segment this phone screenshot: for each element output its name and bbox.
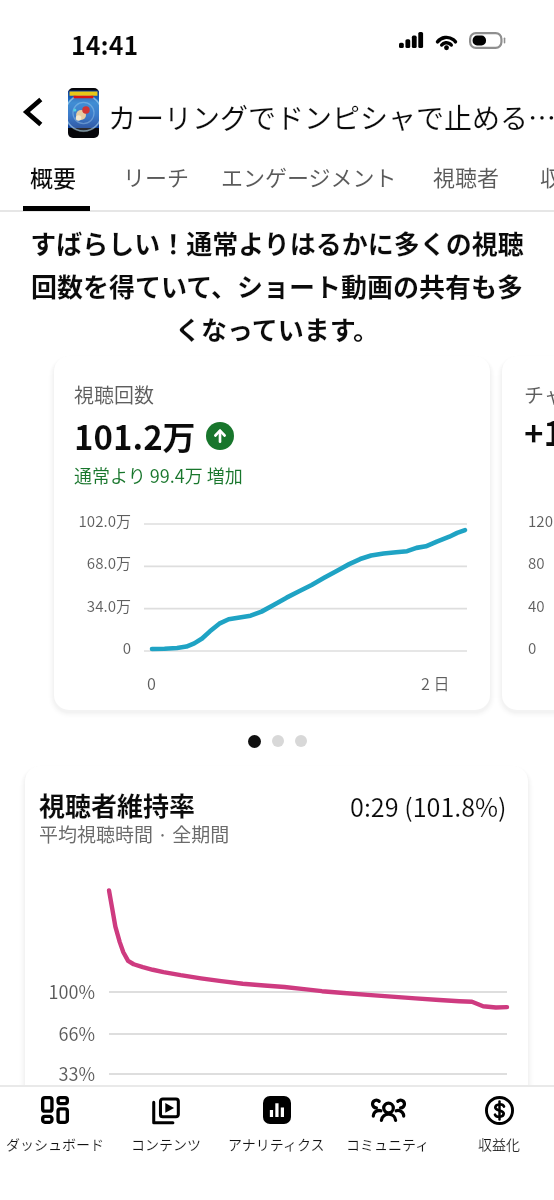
staticText: 0 (147, 671, 156, 694)
staticText: 視聴者 (433, 160, 500, 192)
button[interactable]: 概要 (0, 148, 98, 212)
staticText: コンテンツ (131, 1134, 201, 1154)
staticText: ダッシュボード (6, 1134, 104, 1154)
button[interactable]: アナリティクス (221, 1094, 332, 1200)
staticText: アナリティクス (228, 1134, 325, 1154)
staticText: エンゲージメント (221, 160, 397, 192)
button[interactable]: エンゲージメント (190, 148, 397, 212)
button[interactable]: コンテンツ (110, 1094, 221, 1200)
staticText: 14:41 (71, 26, 139, 62)
button[interactable]: 視聴回数 (54, 356, 490, 710)
staticText: 0 (54, 637, 131, 659)
staticText: すばらしい！通常よりはるかに多くの視聴回数を得ていて、ショート動画の共有も多くな… (26, 224, 528, 348)
staticText: コミュニティ (346, 1134, 430, 1154)
staticText: +1 (524, 408, 554, 456)
button[interactable]: 収益化 (500, 148, 554, 212)
staticText: 34.0万 (54, 595, 131, 617)
staticText: 102.0万 (54, 510, 131, 532)
button[interactable]: 視聴者維持率 (25, 766, 528, 1106)
button[interactable]: 視聴者 (397, 148, 500, 212)
staticText: 0 (528, 637, 537, 659)
staticText: 収益化 (478, 1134, 520, 1154)
staticText: 120 (528, 510, 553, 532)
staticText: チャ (524, 380, 554, 409)
staticText: 概要 (30, 160, 76, 193)
staticText: 0:29 (101.8%) (350, 788, 507, 824)
staticText: リーチ (123, 160, 190, 192)
staticText: 68.0万 (54, 552, 131, 574)
button[interactable]: ダッシュボード (0, 1094, 110, 1200)
staticText: 80 (528, 552, 545, 574)
button[interactable]: リーチ (98, 148, 190, 212)
button[interactable]: チャ (502, 356, 554, 710)
staticText: 40 (528, 595, 545, 617)
staticText: 視聴者維持率 (39, 786, 196, 824)
staticText: 101.2万 (74, 412, 196, 460)
staticText: 通常より 99.4万 増加 (74, 462, 243, 488)
staticText: 33% (25, 1060, 95, 1086)
staticText: 2 日 (421, 671, 450, 694)
staticText: 100% (25, 978, 95, 1004)
button[interactable]: 収益化 (443, 1094, 554, 1200)
button[interactable]: コミュニティ (332, 1094, 443, 1200)
staticText: 66% (25, 1020, 95, 1046)
button[interactable]: Back (7, 86, 59, 138)
staticText: カーリングでドンピシャで止める… (108, 97, 554, 138)
staticText: 平均視聴時間 · 全期間 (39, 820, 230, 848)
staticText: 収益化 (540, 160, 554, 192)
staticText: 視聴回数 (74, 380, 154, 409)
